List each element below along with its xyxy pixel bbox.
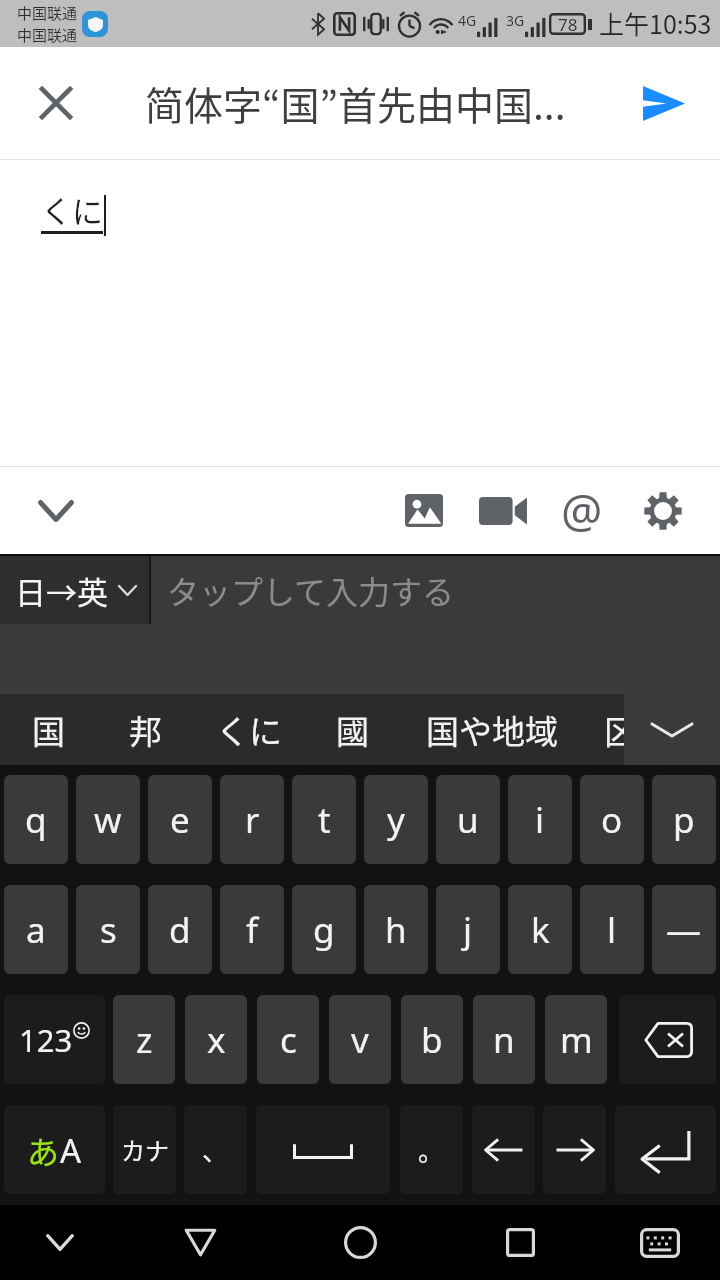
staticText: あ xyxy=(27,1127,60,1173)
button[interactable]: e xyxy=(148,775,212,864)
button[interactable]: g xyxy=(292,885,356,974)
staticText: 邦 xyxy=(129,706,162,754)
staticText: j xyxy=(463,906,473,954)
button[interactable]: m xyxy=(545,995,607,1084)
button[interactable]: Home xyxy=(300,1205,420,1280)
button[interactable]: x xyxy=(185,995,247,1084)
button[interactable]: n xyxy=(473,995,535,1084)
button[interactable]: r xyxy=(220,775,284,864)
staticText: — xyxy=(666,906,702,954)
staticText: 3G xyxy=(506,11,525,30)
button[interactable]: Insert video xyxy=(469,467,537,554)
staticText: u xyxy=(457,796,479,844)
button[interactable]: Switch keyboard xyxy=(600,1205,720,1280)
staticText: m xyxy=(560,1016,593,1064)
button[interactable]: s xyxy=(76,885,140,974)
staticText: p xyxy=(673,796,695,844)
button[interactable]: 国や地域 xyxy=(400,694,584,765)
staticText: h xyxy=(385,906,407,954)
button[interactable]: j xyxy=(436,885,500,974)
button[interactable]: o xyxy=(580,775,644,864)
staticText: b xyxy=(421,1016,443,1064)
button[interactable]: 国 xyxy=(0,694,96,765)
staticText: q xyxy=(25,796,47,844)
button[interactable]: b xyxy=(401,995,463,1084)
staticText: 4G xyxy=(458,11,477,30)
button[interactable]: f xyxy=(220,885,284,974)
button[interactable]: Space xyxy=(256,1105,390,1194)
staticText: 国や地域 xyxy=(426,706,558,754)
staticText: r xyxy=(245,796,260,844)
staticText: 。 xyxy=(418,1131,445,1169)
button[interactable]: 、 xyxy=(184,1105,247,1194)
staticText: s xyxy=(100,906,117,954)
button[interactable]: h xyxy=(364,885,428,974)
button[interactable]: Hide keyboard xyxy=(0,1205,120,1280)
button[interactable]: Switch input mode xyxy=(4,1105,105,1194)
button[interactable]: 日→英 xyxy=(0,556,149,624)
button[interactable]: v xyxy=(329,995,391,1084)
button[interactable]: q xyxy=(4,775,68,864)
staticText: d xyxy=(169,906,191,954)
staticText: i xyxy=(535,796,545,844)
button[interactable]: y xyxy=(364,775,428,864)
button[interactable]: u xyxy=(436,775,500,864)
button[interactable]: 区 xyxy=(584,694,656,765)
staticText: 日→英 xyxy=(15,568,108,613)
button[interactable]: 國 xyxy=(304,694,400,765)
staticText: 、 xyxy=(202,1131,229,1169)
button[interactable]: カナ xyxy=(113,1105,176,1194)
staticText: z xyxy=(136,1016,153,1064)
staticText: 上午10:53 xyxy=(599,5,712,41)
staticText: a xyxy=(26,906,46,954)
button[interactable]: Numbers and emoji xyxy=(4,995,105,1084)
staticText: A xyxy=(60,1128,82,1173)
button[interactable]: Enter xyxy=(615,1105,716,1194)
staticText: 國 xyxy=(336,706,369,754)
button[interactable]: w xyxy=(76,775,140,864)
staticText: x xyxy=(207,1016,226,1064)
button[interactable]: d xyxy=(148,885,212,974)
staticText: 中国联通 xyxy=(17,2,78,24)
button[interactable]: a xyxy=(4,885,68,974)
button[interactable]: タップして入力する xyxy=(151,556,720,624)
staticText: g xyxy=(313,906,335,954)
button[interactable]: 。 xyxy=(400,1105,463,1194)
button[interactable]: Recents xyxy=(460,1205,580,1280)
button[interactable]: c xyxy=(257,995,319,1084)
button[interactable]: Insert image xyxy=(390,467,458,554)
staticText: くに xyxy=(216,706,282,754)
button[interactable]: Move cursor left xyxy=(472,1105,535,1194)
button[interactable]: Move cursor right xyxy=(543,1105,606,1194)
button[interactable]: くに xyxy=(194,694,304,765)
staticText: v xyxy=(351,1016,369,1064)
button[interactable]: l xyxy=(580,885,644,974)
button[interactable]: z xyxy=(113,995,175,1084)
staticText: y xyxy=(387,796,405,844)
button[interactable]: Mention someone xyxy=(548,467,616,554)
staticText: 国 xyxy=(32,706,65,754)
staticText: n xyxy=(493,1016,515,1064)
button[interactable]: Collapse toolbar xyxy=(13,467,99,554)
staticText: e xyxy=(170,796,190,844)
staticText: c xyxy=(280,1016,297,1064)
button[interactable]: Backspace xyxy=(619,995,716,1084)
button[interactable]: k xyxy=(508,885,572,974)
staticText: l xyxy=(607,906,617,954)
button[interactable]: t xyxy=(292,775,356,864)
staticText: f xyxy=(246,906,259,954)
staticText: くに xyxy=(41,187,103,232)
staticText: t xyxy=(318,796,331,844)
staticText: @ xyxy=(561,479,603,542)
button[interactable]: Close xyxy=(14,58,98,148)
button[interactable]: Back xyxy=(140,1205,260,1280)
staticText: 78 xyxy=(558,13,578,35)
button[interactable]: Send xyxy=(622,58,706,148)
button[interactable]: Settings xyxy=(629,467,697,554)
button[interactable]: p xyxy=(652,775,716,864)
button[interactable]: — xyxy=(652,885,716,974)
button[interactable]: 邦 xyxy=(96,694,194,765)
staticText: 简体字“国”首先由中国... xyxy=(145,75,566,131)
button[interactable]: i xyxy=(508,775,572,864)
button[interactable]: More suggestions xyxy=(624,694,720,765)
